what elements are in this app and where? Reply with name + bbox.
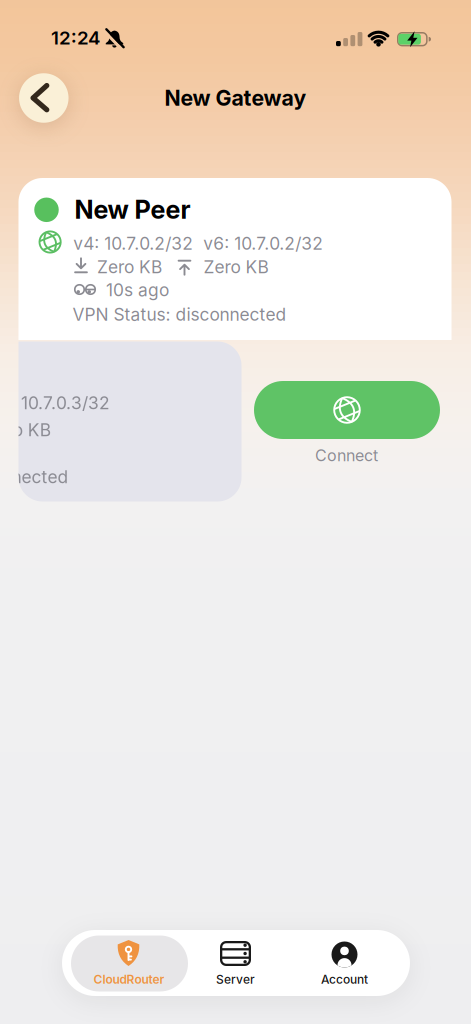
button[interactable]: Server — [178, 932, 293, 994]
button[interactable]: Back — [19, 73, 68, 123]
staticText: Zero KB — [97, 257, 162, 277]
staticText: CloudRouter — [93, 972, 164, 987]
staticText: Account — [321, 972, 368, 987]
staticText: ro KB — [7, 420, 51, 440]
button[interactable]: Peer — [18, 341, 241, 501]
button[interactable]: Account — [287, 932, 402, 994]
staticText: 10s ago — [106, 280, 169, 300]
button[interactable]: Connect — [254, 381, 440, 439]
staticText: Zero KB — [203, 257, 268, 277]
staticText: Connect — [315, 446, 378, 465]
button[interactable]: New Peer — [18, 178, 451, 340]
staticText: v4: 10.7.0.2/32 v6: 10.7.0.2/32 — [73, 233, 323, 254]
staticText: 12:24 — [51, 27, 100, 49]
staticText: VPN Status: disconnected — [72, 304, 286, 325]
staticText: New Gateway — [164, 85, 306, 111]
staticText: 10.7.0.3/32 — [21, 393, 110, 413]
staticText: New Peer — [75, 195, 191, 224]
staticText: Server — [216, 972, 255, 987]
staticText: nected — [11, 467, 68, 487]
button[interactable]: CloudRouter — [71, 932, 188, 994]
